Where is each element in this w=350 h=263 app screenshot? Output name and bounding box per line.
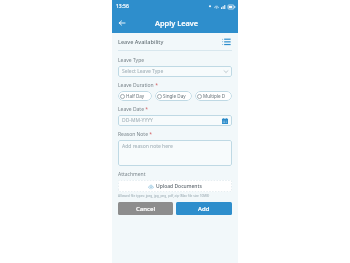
button[interactable]: Multiple D	[195, 91, 232, 101]
button[interactable]: Half Day	[118, 91, 152, 101]
button[interactable]: DD-MM-YYYY	[118, 115, 232, 126]
button[interactable]: Single Day	[155, 91, 192, 101]
staticText: *	[148, 131, 153, 138]
staticText: DD-MM-YYYY	[122, 117, 221, 124]
staticText: Select Leave Type	[122, 68, 224, 75]
button[interactable]: Select Leave Type	[118, 66, 232, 77]
staticText: Single Day	[163, 93, 186, 99]
button[interactable]: Upload Documents	[118, 180, 232, 192]
staticText: Reason Note	[118, 131, 148, 138]
button[interactable]: Leave Availability	[118, 36, 232, 47]
button[interactable]: Add reason note here	[118, 140, 232, 166]
staticText: Multiple D	[203, 93, 226, 99]
staticText: *	[144, 106, 149, 113]
staticText: *	[154, 82, 159, 89]
button[interactable]: Leave availability list	[221, 36, 232, 47]
staticText: Attachment	[118, 171, 146, 178]
staticText: Leave Date	[118, 106, 144, 113]
staticText: Leave Duration	[118, 82, 154, 89]
staticText: Half Day	[126, 93, 145, 99]
staticText: Cancel	[136, 205, 156, 213]
button[interactable]: Add	[176, 202, 232, 215]
staticText: Add	[198, 205, 210, 213]
button[interactable]: Pick date	[221, 117, 228, 124]
staticText: Upload Documents	[156, 183, 202, 190]
button[interactable]: Back	[115, 16, 129, 30]
staticText: Leave Type	[118, 57, 145, 64]
staticText: Allowed file types: jpeg, jpg, png, pdf,…	[118, 194, 210, 198]
staticText: Leave Availability	[118, 38, 221, 45]
staticText: Add reason note here	[122, 143, 173, 150]
staticText: Apply Leave	[155, 18, 199, 28]
staticText: 13:56	[116, 3, 129, 10]
button[interactable]: Cancel	[118, 202, 173, 215]
